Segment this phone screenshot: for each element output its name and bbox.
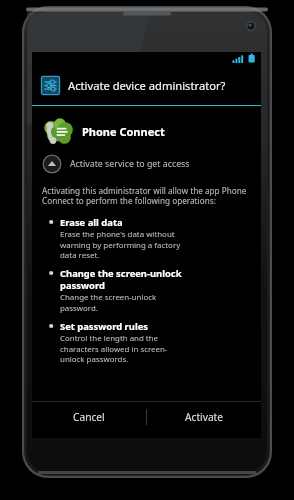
staticText: Activating this administrator will allow…	[42, 185, 249, 207]
staticText: Change the screen-unlock password	[60, 267, 182, 292]
staticText: Set password rules	[60, 320, 148, 333]
staticText: Phone Connect	[82, 124, 165, 139]
staticText: Activate service to get access	[70, 158, 190, 170]
staticText: Erase the phone's data without warning b…	[60, 229, 181, 260]
staticText: Erase all data	[60, 216, 123, 229]
staticText: Activate	[185, 410, 224, 424]
button[interactable]: Collapse details	[42, 154, 62, 174]
staticText: Control the length and the characters al…	[60, 333, 168, 364]
staticText: Activate device administrator?	[68, 78, 226, 93]
button[interactable]: Cancel	[32, 402, 146, 432]
button[interactable]: Collapse details	[32, 152, 261, 176]
staticText: Cancel	[73, 410, 105, 424]
button[interactable]: Activate	[147, 402, 261, 432]
staticText: Change the screen-unlock password.	[60, 292, 157, 313]
